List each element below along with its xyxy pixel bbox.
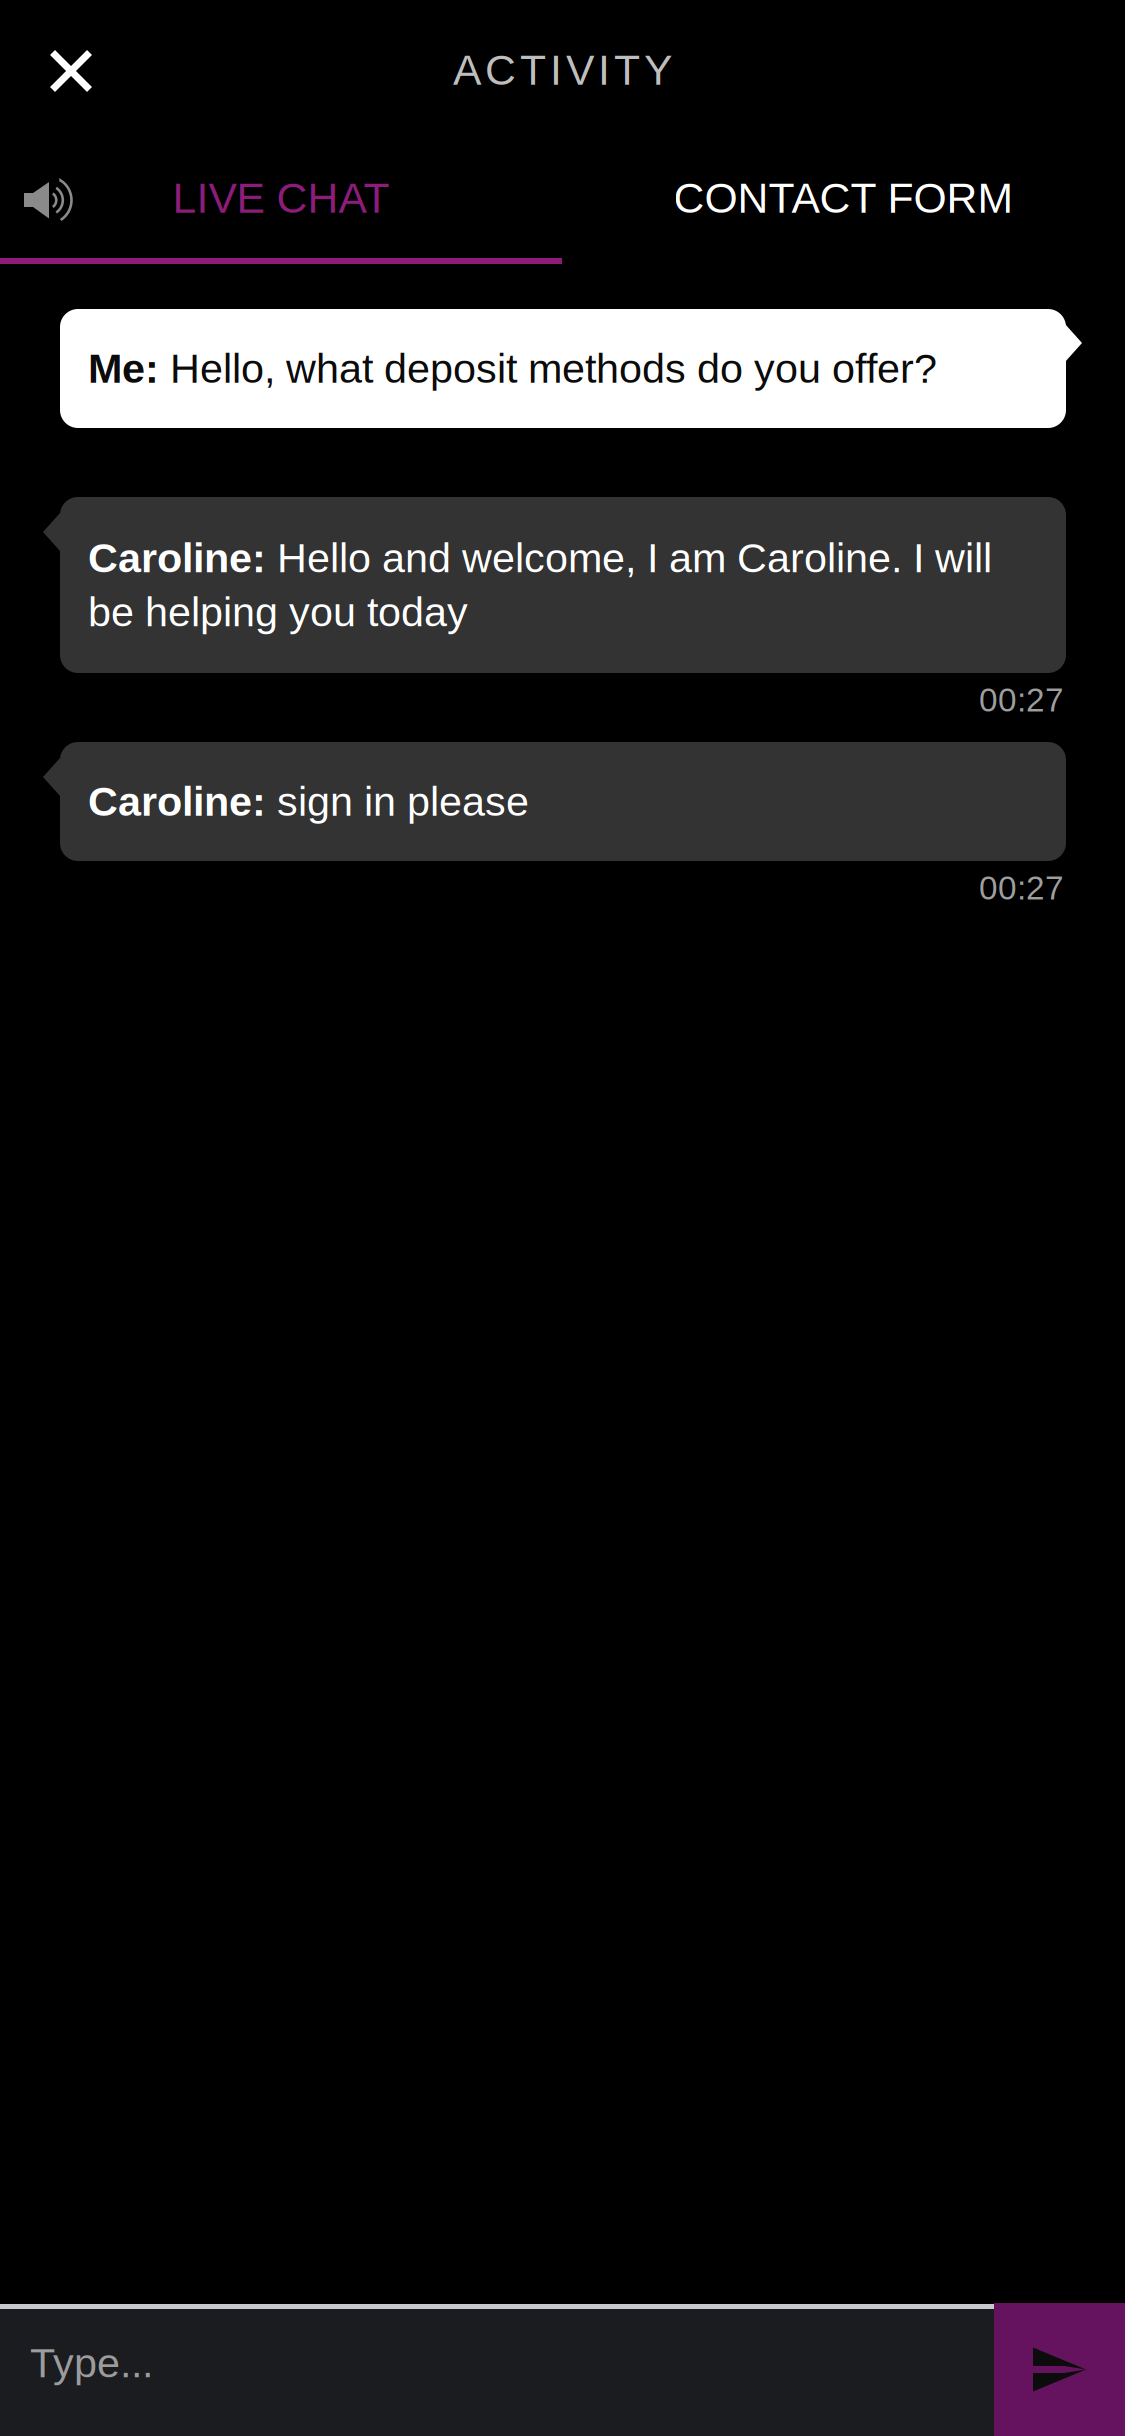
staticText: LIVE CHAT	[172, 174, 389, 222]
staticText: A C T I V I T Y	[453, 46, 672, 94]
staticText: CONTACT FORM	[673, 174, 1013, 222]
button[interactable]: Close	[16, 11, 126, 131]
button[interactable]: LIVE CHAT	[0, 138, 562, 258]
staticText: Type...	[30, 2340, 153, 2386]
button[interactable]: CONTACT FORM	[562, 138, 1125, 258]
staticText: 00:27	[979, 869, 1064, 907]
staticText: 00:27	[979, 681, 1064, 719]
staticText: Caroline: Hello and welcome, I am Caroli…	[88, 535, 992, 634]
staticText: Caroline: sign in please	[88, 779, 529, 824]
button[interactable]: Send	[994, 2303, 1125, 2436]
staticText: Me: Hello, what deposit methods do you o…	[88, 346, 937, 391]
